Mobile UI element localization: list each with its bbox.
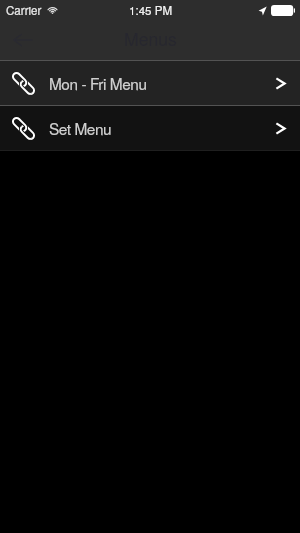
staticText: Set Menu [49,117,112,139]
button[interactable]: Set Menu [0,106,300,150]
button[interactable]: Mon - Fri Menu [0,61,300,105]
staticText: Mon - Fri Menu [49,72,147,94]
staticText: 1:45 PM [129,2,173,19]
staticText: Carrier [6,2,42,19]
